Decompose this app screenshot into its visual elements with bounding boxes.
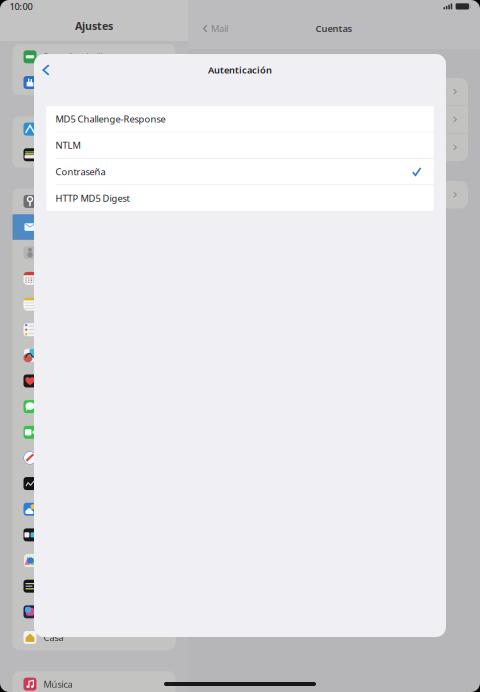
button[interactable]: MD5 Challenge-Response <box>46 106 433 132</box>
button[interactable]: Mapas <box>12 548 175 573</box>
button[interactable]: Fotos <box>12 599 175 625</box>
button[interactable]: NTLM <box>46 132 433 158</box>
staticText: Casa <box>43 631 63 644</box>
button[interactable]: Salud <box>12 368 175 394</box>
staticText: MD5 Challenge-Response <box>55 113 165 125</box>
staticText: Música <box>43 678 72 690</box>
button[interactable]: Música <box>12 671 175 692</box>
button[interactable]: Freeform <box>12 342 175 368</box>
staticText: App Store <box>43 123 86 135</box>
staticText: Ajustes <box>75 19 113 33</box>
staticText: Cartera <box>43 149 75 161</box>
button[interactable]: Casa <box>12 625 175 650</box>
staticText: 10:00 <box>9 0 32 13</box>
staticText: Correo, Contactos, Calendarios <box>311 141 446 154</box>
button[interactable]: Añadir cuenta <box>206 181 468 208</box>
staticText: Correo, Notas <box>385 113 446 126</box>
button[interactable]: Mensajes <box>12 394 175 419</box>
staticText: Contraseñas <box>43 195 97 208</box>
staticText: Autenticación <box>208 64 272 76</box>
button[interactable]: Traducir <box>12 522 175 548</box>
button[interactable]: App Store <box>12 116 175 142</box>
button[interactable]: Pantalla y brillo <box>12 44 175 70</box>
button[interactable]: Cartera <box>12 142 175 167</box>
button[interactable]: Mail <box>12 214 175 240</box>
staticText: HTTP MD5 Digest <box>55 192 129 204</box>
button[interactable]: Notas <box>12 291 175 317</box>
button[interactable]: iCloud <box>206 78 468 105</box>
button[interactable]: Contactos <box>12 240 175 265</box>
staticText: Pantalla y brillo <box>43 51 108 63</box>
button[interactable]: Privacidad <box>12 70 175 95</box>
button[interactable]: Atajos <box>12 573 175 599</box>
button[interactable]: HTTP MD5 Digest <box>46 185 433 211</box>
button[interactable]: Back <box>34 57 58 83</box>
button[interactable]: Gmail <box>206 106 468 133</box>
button[interactable]: Calendario <box>12 265 175 291</box>
staticText: NTLM <box>55 139 80 151</box>
button[interactable]: Tiempo <box>12 496 175 522</box>
button[interactable]: Mail <box>201 17 230 40</box>
button[interactable]: Contraseñas <box>12 189 175 214</box>
button[interactable]: FaceTime <box>12 419 175 445</box>
staticText: Mail <box>211 22 228 35</box>
button[interactable]: Contraseña <box>46 159 433 184</box>
button[interactable]: Recordatorios <box>12 317 175 342</box>
staticText: Cuentas <box>315 22 352 35</box>
button[interactable]: Safari <box>12 445 175 471</box>
staticText: Contraseña <box>55 165 105 178</box>
button[interactable]: Bolsa <box>12 471 175 496</box>
button[interactable]: Exchange <box>206 134 468 161</box>
